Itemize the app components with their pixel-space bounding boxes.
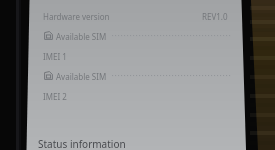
staticText: IMEI 1 xyxy=(43,51,67,62)
staticText: Available SIM xyxy=(56,71,107,82)
button[interactable]: Hardware version xyxy=(0,5,275,25)
button[interactable]: SIM card xyxy=(0,25,275,45)
button[interactable]: IMEI 1 xyxy=(0,45,275,65)
button[interactable]: SIM card xyxy=(0,65,275,85)
staticText: IMEI 2 xyxy=(43,91,67,102)
button[interactable]: Status information xyxy=(0,128,275,150)
button[interactable]: IMEI 2 xyxy=(0,85,275,105)
staticText: Hardware version xyxy=(43,11,110,22)
other: SIM card xyxy=(44,31,53,40)
staticText: Status information xyxy=(38,137,126,150)
staticText: Available SIM xyxy=(56,31,107,42)
staticText: REV1.0 xyxy=(202,11,228,22)
other: SIM card xyxy=(44,71,53,80)
